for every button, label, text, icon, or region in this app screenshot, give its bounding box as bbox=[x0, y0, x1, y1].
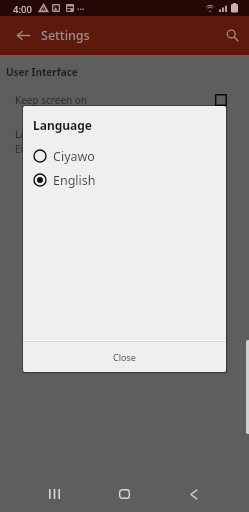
button[interactable]: Language bbox=[0, 125, 249, 159]
button[interactable]: Back bbox=[172, 472, 216, 512]
staticText: User Interface bbox=[6, 65, 78, 79]
staticText: English bbox=[53, 172, 96, 189]
staticText: English bbox=[15, 142, 50, 156]
staticText: Ciyawo bbox=[53, 148, 95, 165]
staticText: Language bbox=[33, 117, 93, 133]
button[interactable]: Keep screen on bbox=[0, 86, 249, 114]
button[interactable]: Close bbox=[23, 341, 226, 372]
button[interactable]: Ciyawo bbox=[23, 144, 226, 168]
button[interactable]: Search bbox=[212, 16, 249, 55]
button[interactable]: Home bbox=[102, 472, 146, 512]
staticText: Language bbox=[15, 127, 62, 141]
button[interactable]: Navigate up bbox=[3, 16, 43, 55]
staticText: Close bbox=[113, 351, 136, 363]
button[interactable]: English bbox=[23, 168, 226, 192]
staticText: 4:00 bbox=[13, 3, 32, 16]
staticText: ··· bbox=[77, 2, 85, 14]
staticText: Keep screen on bbox=[15, 93, 88, 107]
staticText: Settings bbox=[41, 27, 90, 44]
button[interactable]: Recent apps bbox=[32, 472, 76, 512]
